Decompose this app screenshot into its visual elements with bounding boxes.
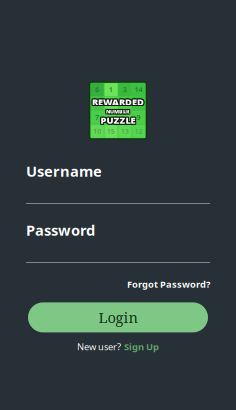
staticText: 6	[95, 85, 99, 94]
staticText: 3	[123, 85, 127, 94]
staticText: Password	[26, 220, 95, 240]
staticText: Username	[26, 161, 102, 181]
staticText: NUMBER	[106, 107, 130, 114]
staticText: PUZZLE	[99, 115, 134, 127]
staticText: PUZZLE	[100, 114, 135, 126]
staticText: PUZZLE	[99, 114, 134, 126]
button[interactable]: Sign Up	[124, 340, 159, 353]
button[interactable]: Login	[28, 302, 208, 332]
staticText: NUMBER	[107, 108, 131, 115]
staticText: REWARDED	[92, 96, 144, 108]
staticText: PUZZLE	[101, 114, 136, 126]
staticText: 9	[137, 113, 141, 122]
staticText: PUZZLE	[100, 113, 135, 125]
staticText: 10	[93, 127, 101, 136]
staticText: 13	[121, 127, 129, 136]
staticText: REWARDED	[91, 97, 143, 109]
staticText: NUMBER	[105, 108, 129, 115]
staticText: REWARDED	[92, 97, 144, 109]
staticText: Sign Up	[124, 340, 159, 353]
staticText: Forgot Password?	[127, 278, 210, 290]
staticText: REWARDED	[93, 97, 145, 109]
staticText: REWARDED	[91, 96, 143, 108]
staticText: 7	[95, 113, 99, 122]
staticText: 1	[109, 85, 113, 94]
button[interactable]: Forgot Password?	[127, 278, 210, 290]
staticText: New user?	[77, 340, 121, 353]
staticText: REWARDED	[92, 95, 144, 107]
staticText: NUMBER	[106, 109, 130, 116]
staticText: Login	[98, 307, 137, 327]
staticText: 15	[107, 127, 115, 136]
staticText: PUZZLE	[101, 113, 136, 125]
staticText: NUMBER	[105, 109, 129, 116]
staticText: REWARDED	[91, 95, 143, 107]
staticText: NUMBER	[107, 107, 131, 114]
staticText: NUMBER	[107, 109, 131, 116]
staticText: 14	[135, 85, 143, 94]
staticText: NUMBER	[105, 107, 129, 114]
staticText: 12	[135, 127, 143, 136]
staticText: REWARDED	[93, 95, 145, 107]
staticText: NUMBER	[106, 108, 130, 115]
staticText: PUZZLE	[101, 115, 136, 127]
staticText: PUZZLE	[100, 115, 135, 127]
staticText: REWARDED	[93, 96, 145, 108]
staticText: PUZZLE	[99, 113, 134, 125]
